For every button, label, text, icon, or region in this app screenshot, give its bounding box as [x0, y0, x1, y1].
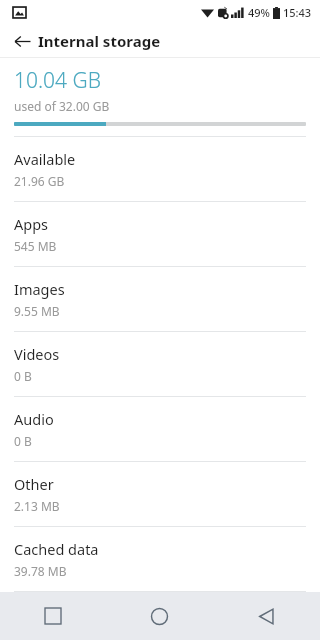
staticText: Internal storage — [38, 31, 161, 51]
staticText: 9.55 MB — [14, 303, 60, 319]
button[interactable]: Recent apps — [0, 592, 106, 640]
button[interactable]: Images — [0, 267, 320, 331]
staticText: 2.13 MB — [14, 498, 60, 514]
staticText: Other — [14, 474, 54, 494]
staticText: 0 B — [14, 433, 32, 449]
button[interactable]: Cached data — [0, 527, 320, 591]
button[interactable]: Available — [0, 137, 320, 201]
staticText: System data — [14, 596, 98, 616]
staticText: Available — [14, 149, 76, 169]
staticText: used of 32.00 GB — [14, 98, 110, 114]
staticText: Apps — [14, 214, 49, 234]
staticText: 545 MB — [14, 238, 57, 254]
staticText: 49% — [248, 5, 270, 20]
button[interactable]: System data — [0, 592, 320, 640]
button[interactable]: Other — [0, 462, 320, 526]
button[interactable]: Back — [6, 25, 38, 57]
staticText: 15:43 — [283, 5, 312, 20]
staticText: Cached data — [14, 539, 99, 559]
button[interactable]: Apps — [0, 202, 320, 266]
button[interactable]: Home — [106, 592, 213, 640]
button[interactable]: Back — [213, 592, 320, 640]
staticText: Videos — [14, 344, 60, 364]
staticText: 0 B — [14, 368, 32, 384]
staticText: Audio — [14, 409, 54, 429]
staticText: 10.04 GB — [14, 66, 102, 95]
button[interactable]: Videos — [0, 332, 320, 396]
staticText: 39.78 MB — [14, 563, 67, 579]
button[interactable]: Audio — [0, 397, 320, 461]
staticText: 9.46 GB — [14, 620, 58, 636]
staticText: 21.96 GB — [14, 173, 65, 189]
staticText: Images — [14, 279, 65, 299]
